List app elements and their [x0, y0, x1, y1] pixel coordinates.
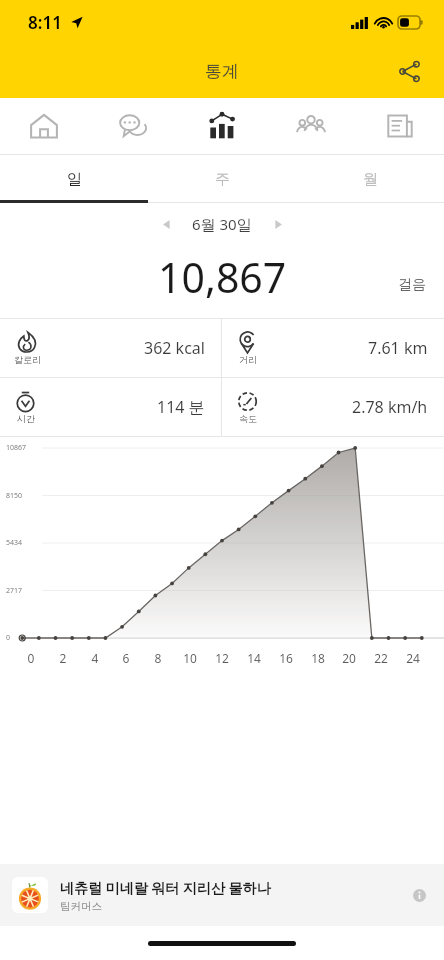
button[interactable]: News [355, 98, 444, 154]
button[interactable]: Home [0, 98, 88, 154]
staticText: 시간 [17, 413, 35, 424]
staticText: 5434 [6, 538, 23, 548]
staticText: 거리 [239, 354, 257, 365]
staticText: 0 [22, 650, 40, 666]
button[interactable]: Chat [88, 98, 177, 154]
staticText: 22 [372, 650, 390, 666]
staticText: 주 [215, 170, 230, 189]
button[interactable]: 주 [148, 155, 296, 203]
staticText: 7.61 km [368, 337, 428, 359]
button[interactable]: 일 [0, 155, 148, 203]
button[interactable]: Ad info [406, 882, 432, 908]
button[interactable]: Community [266, 98, 355, 154]
staticText: 8 [149, 650, 167, 666]
button[interactable]: Statistics [177, 98, 266, 154]
button[interactable]: 칼로리 [0, 319, 221, 377]
button[interactable]: Next day [260, 206, 296, 242]
staticText: 10,867 [158, 249, 287, 305]
staticText: 10867 [6, 443, 27, 453]
button[interactable]: Share [386, 48, 432, 94]
button[interactable]: Previous day [148, 206, 184, 242]
staticText: 8150 [6, 491, 23, 501]
staticText: 6 [117, 650, 135, 666]
staticText: 14 [245, 650, 263, 666]
staticText: 통계 [205, 61, 239, 82]
staticText: 2.78 km/h [352, 396, 428, 418]
staticText: 12 [213, 650, 231, 666]
staticText: 24 [404, 650, 422, 666]
staticText: 월 [363, 170, 378, 189]
staticText: 걸음 [398, 276, 426, 294]
staticText: 4 [86, 650, 104, 666]
staticText: 2717 [6, 586, 23, 596]
staticText: 팀커머스 [60, 900, 102, 913]
staticText: 속도 [239, 413, 257, 424]
staticText: 일 [67, 170, 82, 189]
staticText: 네츄럴 미네랄 워터 지리산 물하나 [60, 878, 271, 897]
staticText: 2 [54, 650, 72, 666]
staticText: 114 분 [157, 396, 205, 418]
staticText: 20 [340, 650, 358, 666]
staticText: 6월 30일 [192, 214, 252, 234]
staticText: 8:11 [28, 11, 62, 34]
button[interactable]: 월 [296, 155, 444, 203]
staticText: 칼로리 [14, 354, 41, 365]
staticText: 10 [181, 650, 199, 666]
button[interactable]: 속도 [222, 378, 444, 436]
button[interactable]: 시간 [0, 378, 221, 436]
button[interactable]: 거리 [222, 319, 444, 377]
staticText: 362 kcal [144, 337, 205, 359]
staticText: 18 [309, 650, 327, 666]
button[interactable]: 네츄럴 미네랄 워터 지리산 물하나 [0, 864, 444, 926]
staticText: 0 [6, 633, 11, 643]
staticText: 16 [277, 650, 295, 666]
